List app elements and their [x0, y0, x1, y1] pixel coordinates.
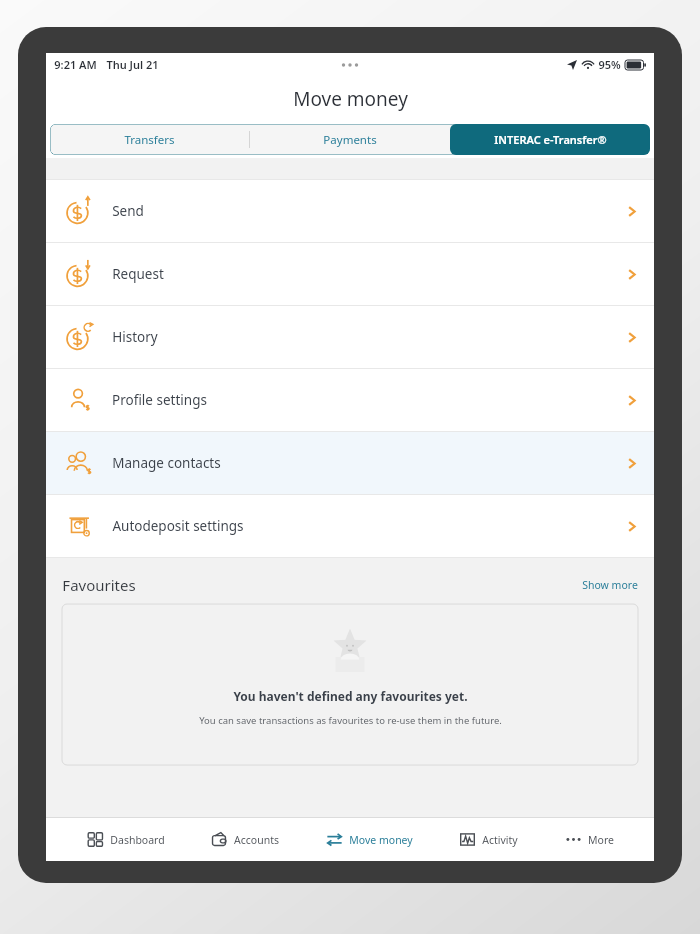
other: More — [565, 831, 582, 848]
button[interactable]: Request — [46, 243, 654, 305]
other: Move money — [326, 831, 343, 848]
staticText: Send — [112, 202, 144, 220]
other: Accounts — [211, 831, 228, 848]
staticText: Profile settings — [112, 391, 207, 409]
staticText: Favourites — [62, 575, 136, 595]
button[interactable]: Autodeposit settings — [46, 495, 654, 557]
staticText: Request — [112, 265, 164, 283]
staticText: Payments — [323, 132, 377, 148]
staticText: 95% — [598, 57, 621, 72]
staticText: Move money — [293, 86, 408, 112]
button[interactable]: Show more — [578, 574, 642, 596]
button[interactable]: Manage contacts — [46, 432, 654, 494]
button[interactable]: History — [46, 306, 654, 368]
staticText: History — [112, 328, 158, 346]
staticText: You haven't defined any favourites yet. — [233, 688, 468, 704]
button[interactable]: Payments — [250, 124, 450, 155]
other: Activity — [459, 831, 476, 848]
button[interactable]: Send — [46, 180, 654, 242]
staticText: Thu Jul 21 — [106, 57, 159, 72]
staticText: Accounts — [234, 833, 279, 847]
staticText: More — [588, 833, 614, 847]
staticText: 9:21 AM — [54, 57, 97, 72]
staticText: Move money — [349, 833, 413, 847]
staticText: Show more — [582, 578, 638, 592]
staticText: Activity — [482, 833, 518, 847]
staticText: Autodeposit settings — [112, 517, 244, 535]
button[interactable]: INTERAC e-Transfer® — [450, 124, 650, 155]
button[interactable]: Transfers — [50, 124, 249, 155]
button[interactable]: Activity — [453, 826, 524, 853]
staticText: You can save transactions as favourites … — [199, 714, 502, 727]
button[interactable]: Move money — [320, 826, 419, 853]
staticText: INTERAC e-Transfer® — [494, 132, 607, 147]
staticText: Transfers — [124, 132, 175, 148]
button[interactable]: Profile settings — [46, 369, 654, 431]
other: Dashboard — [87, 831, 104, 848]
button[interactable]: Accounts — [205, 826, 285, 853]
staticText: Dashboard — [110, 833, 165, 847]
button[interactable]: More — [559, 826, 620, 853]
button[interactable]: Dashboard — [81, 826, 171, 853]
staticText: Manage contacts — [112, 454, 221, 472]
